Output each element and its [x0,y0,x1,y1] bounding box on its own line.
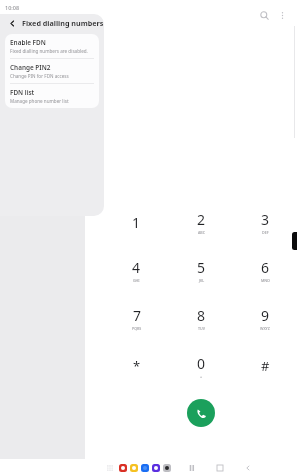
button[interactable]: 3 [233,208,297,236]
staticText: 5 [197,258,206,277]
button[interactable]: App [119,464,127,472]
staticText: Fixed dialling numbers [22,18,104,28]
staticText: 7 [133,306,142,325]
staticText: WXYZ [260,326,270,331]
button[interactable]: App [130,464,138,472]
staticText: 9 [261,306,270,325]
button[interactable]: 2 [169,208,233,236]
staticText: TUV [198,326,205,331]
staticText: 8 [197,306,206,325]
button[interactable]: 4 [104,256,169,284]
staticText: Enable FDN [10,38,46,47]
button[interactable]: 8 [169,304,233,332]
button[interactable]: 6 [233,256,297,284]
button[interactable]: # [233,352,297,380]
button[interactable]: Back [241,461,255,475]
button[interactable]: Change PIN2 [5,59,99,83]
staticText: 0 [197,354,206,373]
staticText: DEF [262,230,269,235]
button[interactable]: 1 [104,208,169,236]
button[interactable]: 5 [169,256,233,284]
staticText: ABC [198,230,205,235]
staticText: + [200,374,203,379]
button[interactable]: * [104,352,169,380]
button[interactable]: 7 [104,304,169,332]
button[interactable]: Search [255,6,273,24]
button[interactable]: App [163,464,171,472]
staticText: 6 [261,258,270,277]
button[interactable]: Call [187,399,215,427]
staticText: Change PIN for FDN access [10,73,69,79]
staticText: 10:08 [5,4,20,11]
button[interactable]: App [141,464,149,472]
button[interactable]: More options [273,6,291,24]
staticText: GHI [133,278,140,283]
staticText: 4 [132,258,141,277]
button[interactable]: Enable FDN [5,34,99,58]
staticText: 3 [261,210,270,229]
staticText: PQRS [132,326,142,331]
staticText: * [133,357,141,375]
staticText: Fixed dialling numbers are disabled. [10,48,88,54]
button[interactable]: Home [213,461,227,475]
staticText: # [261,357,270,375]
button[interactable]: 9 [233,304,297,332]
staticText: 2 [197,210,206,229]
staticText: 1 [132,213,141,232]
button[interactable]: App [152,464,160,472]
button[interactable]: Recents [185,461,199,475]
staticText: Change PIN2 [10,63,51,72]
staticText: FDN list [10,88,35,97]
button[interactable]: FDN list [5,84,99,108]
staticText: Manage phone number list [10,98,69,104]
button[interactable]: Navigate up [5,16,19,30]
staticText: JKL [199,278,205,283]
staticText: MNO [261,278,270,283]
button[interactable]: 0 [169,352,233,380]
